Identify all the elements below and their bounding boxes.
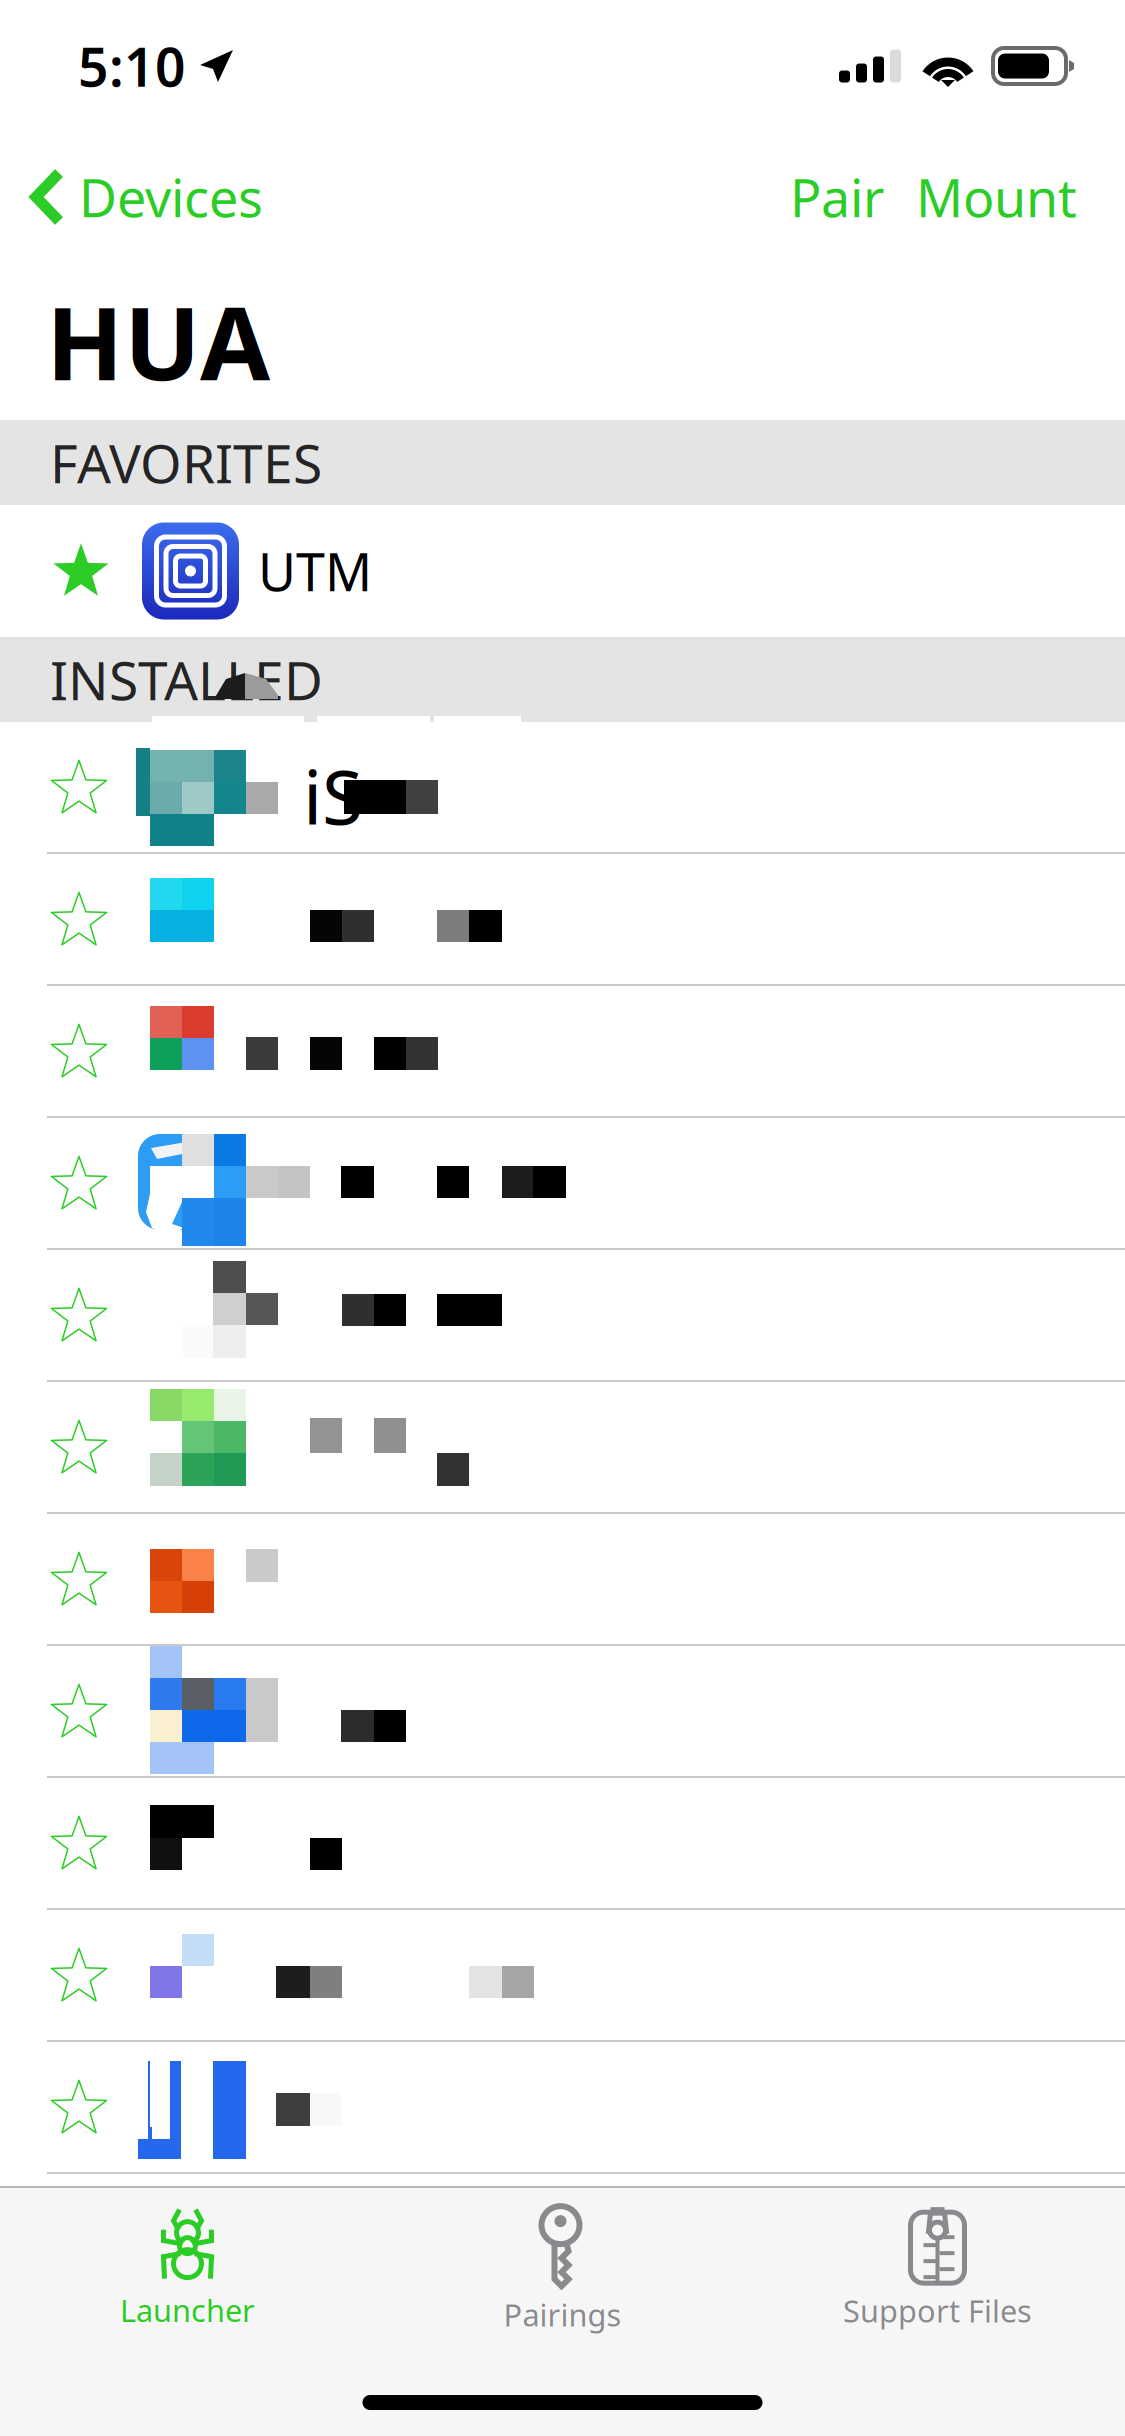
staticText: HUA xyxy=(46,274,270,408)
button[interactable] xyxy=(0,1250,1125,1382)
staticText: Launcher xyxy=(120,2290,255,2330)
button[interactable] xyxy=(0,2042,1125,2174)
button[interactable] xyxy=(0,986,1125,1118)
staticText: Mount xyxy=(916,162,1077,232)
button[interactable]: Pairings xyxy=(375,2188,750,2336)
button[interactable]: iS xyxy=(0,722,1125,854)
button[interactable] xyxy=(0,1118,1125,1250)
staticText: Pair xyxy=(790,162,884,232)
button[interactable]: Support Files xyxy=(750,2188,1125,2336)
staticText: Devices xyxy=(79,162,263,232)
button[interactable]: Launcher xyxy=(0,2188,375,2336)
staticText: INSTALLED xyxy=(50,644,323,715)
staticText: iS xyxy=(303,746,363,845)
button[interactable]: Mount xyxy=(900,132,1125,262)
button[interactable] xyxy=(0,1910,1125,2042)
button[interactable] xyxy=(0,1514,1125,1646)
button[interactable]: Pair xyxy=(774,132,900,262)
button[interactable]: Devices xyxy=(0,132,279,262)
button[interactable]: UTM xyxy=(0,505,1125,637)
staticText: Support Files xyxy=(843,2290,1032,2331)
button[interactable] xyxy=(0,1646,1125,1778)
staticText: Pairings xyxy=(503,2294,621,2335)
staticText: FAVORITES xyxy=(50,427,322,498)
staticText: UTM xyxy=(258,536,372,606)
button[interactable] xyxy=(0,1382,1125,1514)
staticText: 5:10 xyxy=(78,31,186,101)
button[interactable] xyxy=(0,854,1125,986)
button[interactable] xyxy=(0,1778,1125,1910)
